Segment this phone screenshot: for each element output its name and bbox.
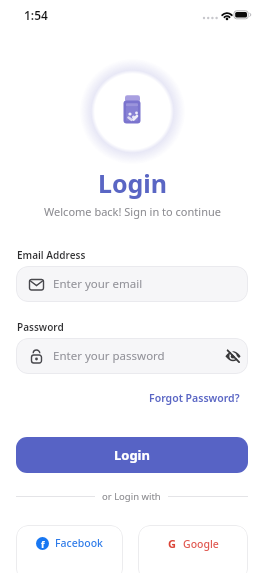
- staticText: Login: [0, 166, 265, 200]
- staticText: Enter your password: [53, 348, 165, 364]
- staticText: Welcome back! Sign in to continue: [0, 204, 265, 219]
- button[interactable]: [225, 348, 241, 364]
- button[interactable]: Enter your password: [16, 338, 248, 374]
- staticText: or Login with: [102, 490, 161, 503]
- button[interactable]: Enter your email: [16, 266, 248, 302]
- button[interactable]: Forgot Password?: [149, 391, 240, 405]
- staticText: Password: [17, 320, 64, 334]
- staticText: Enter your email: [53, 276, 143, 292]
- button[interactable]: Login: [16, 437, 248, 473]
- button[interactable]: G: [138, 525, 248, 573]
- button[interactable]: f: [16, 525, 123, 573]
- staticText: Login: [114, 446, 150, 464]
- staticText: Email Address: [17, 248, 86, 262]
- staticText: Facebook: [55, 536, 103, 550]
- staticText: 1:54: [24, 7, 48, 23]
- staticText: G: [168, 536, 176, 551]
- staticText: Google: [183, 537, 219, 551]
- staticText: f: [41, 538, 45, 550]
